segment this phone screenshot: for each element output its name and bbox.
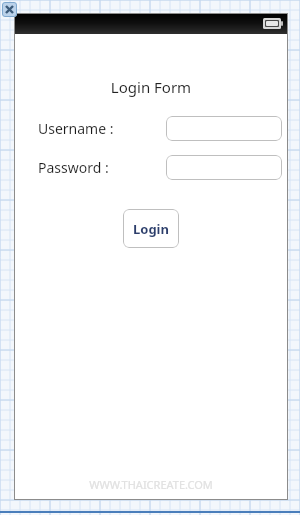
button[interactable]: Text input (166, 116, 282, 141)
staticText: Username : (38, 119, 114, 138)
staticText: Login Form (14, 77, 288, 97)
button[interactable]: Close (2, 2, 17, 17)
staticText: Password : (38, 158, 109, 177)
other: Battery (263, 18, 283, 29)
button[interactable]: Login (123, 209, 179, 248)
staticText: WWW.THAICREATE.COM (14, 477, 288, 492)
staticText: Login (133, 220, 169, 238)
button[interactable]: Text input (166, 155, 282, 180)
